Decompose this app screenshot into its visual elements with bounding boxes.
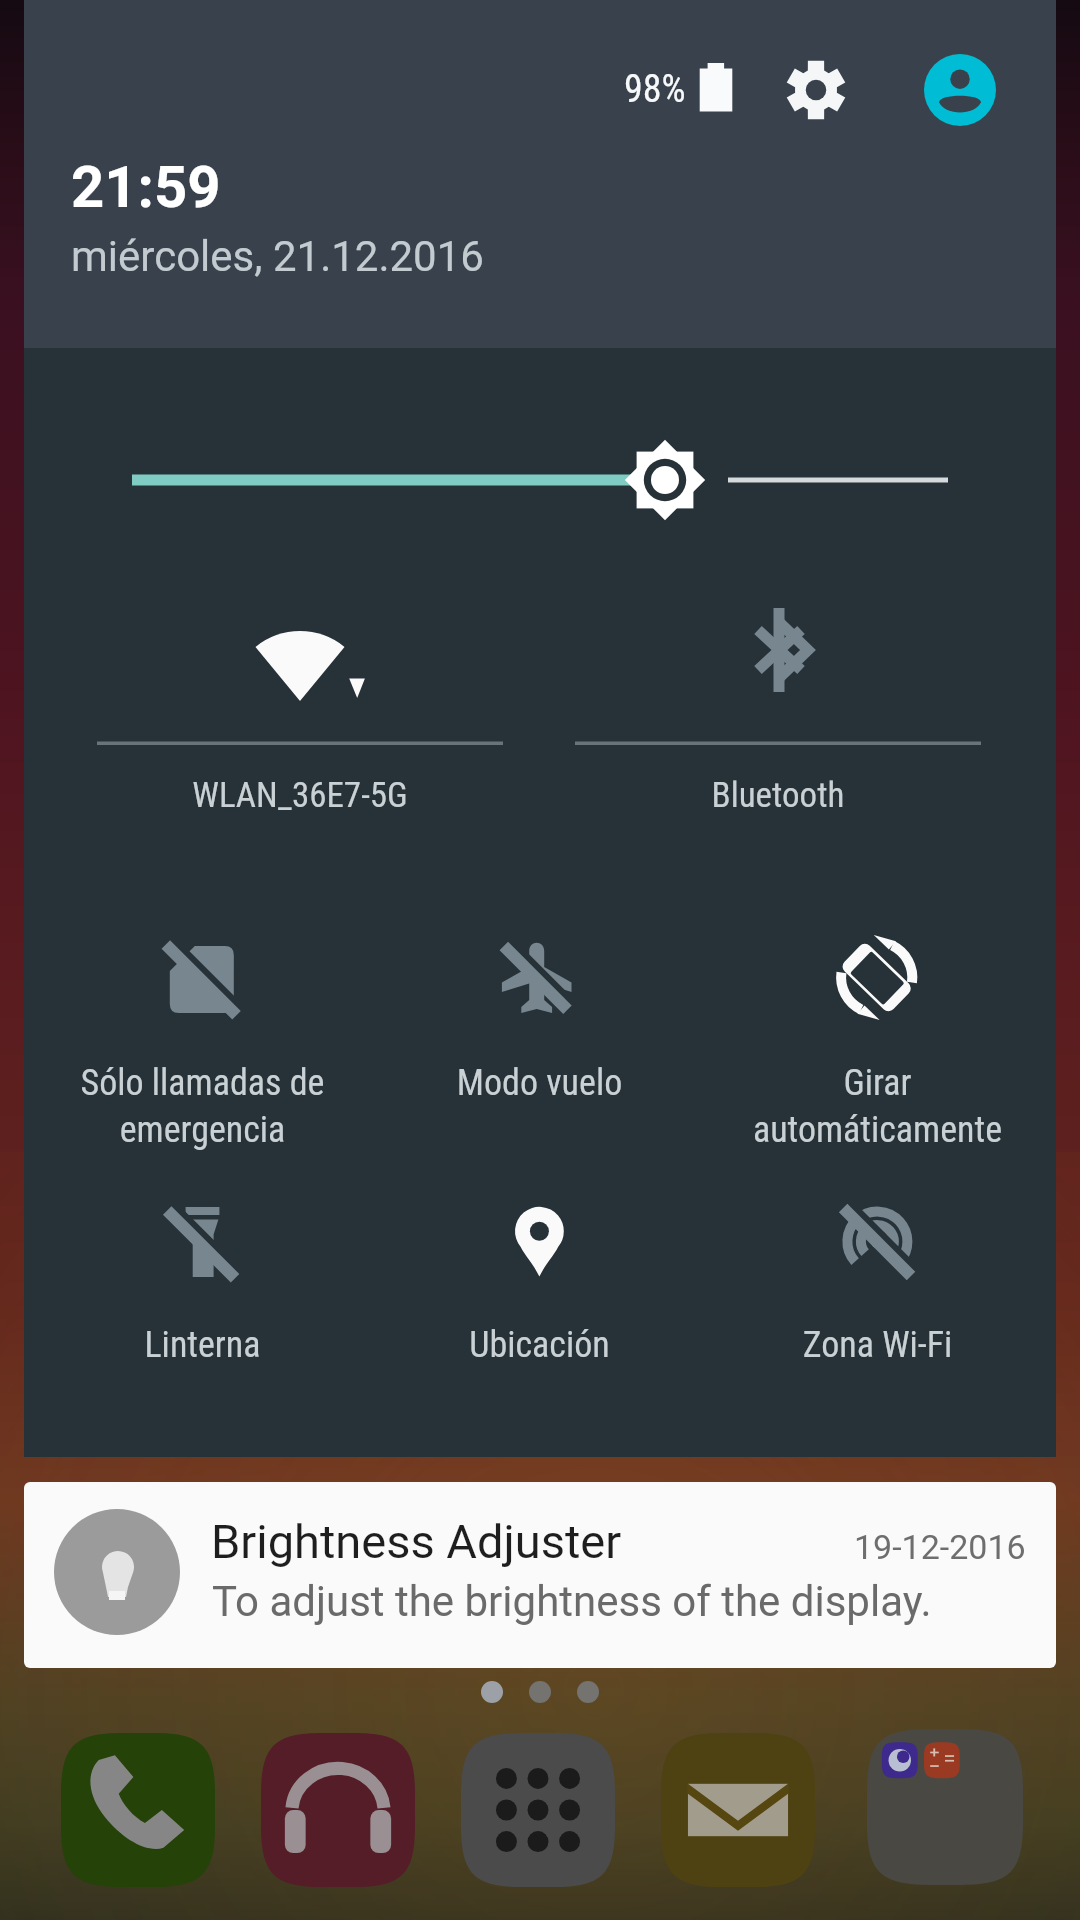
button[interactable]: Girar automáticamente xyxy=(709,920,1046,1170)
button[interactable]: Settings xyxy=(762,36,870,144)
staticText: miércoles, 21.12.2016 xyxy=(71,232,484,281)
button[interactable]: Music xyxy=(261,1733,415,1887)
button[interactable]: Zona Wi-Fi xyxy=(709,1182,1046,1432)
staticText: Girar automáticamente xyxy=(709,1062,1046,1150)
staticText: Linterna xyxy=(34,1324,371,1366)
button[interactable]: Bluetooth xyxy=(575,600,981,840)
button[interactable]: Linterna xyxy=(34,1182,371,1432)
staticText: Modo vuelo xyxy=(371,1062,708,1104)
button[interactable]: Phone xyxy=(61,1733,215,1887)
staticText: WLAN_36E7-5G xyxy=(97,775,503,816)
staticText: Ubicación xyxy=(371,1324,708,1366)
staticText: Bluetooth xyxy=(575,775,981,816)
button[interactable]: Brightness Adjuster xyxy=(24,1482,1056,1668)
button[interactable]: User profile xyxy=(900,30,1020,150)
staticText: 19-12-2016 xyxy=(854,1527,1026,1567)
staticText: Brightness Adjuster xyxy=(211,1514,622,1569)
staticText: To adjust the brightness of the display. xyxy=(212,1577,932,1626)
button[interactable]: Apps xyxy=(461,1733,615,1887)
staticText: Zona Wi-Fi xyxy=(709,1324,1046,1366)
staticText: Sólo llamadas de emergencia xyxy=(34,1062,371,1150)
staticText: 21:59 xyxy=(71,153,221,221)
button[interactable]: Folder xyxy=(867,1729,1023,1885)
button[interactable]: Sólo llamadas de emergencia xyxy=(34,920,371,1170)
button[interactable]: Modo vuelo xyxy=(371,920,708,1170)
staticText: 98% xyxy=(624,67,686,112)
button[interactable]: Email xyxy=(661,1733,815,1887)
button[interactable]: WLAN_36E7-5G xyxy=(97,600,503,840)
button[interactable]: Ubicación xyxy=(371,1182,708,1432)
